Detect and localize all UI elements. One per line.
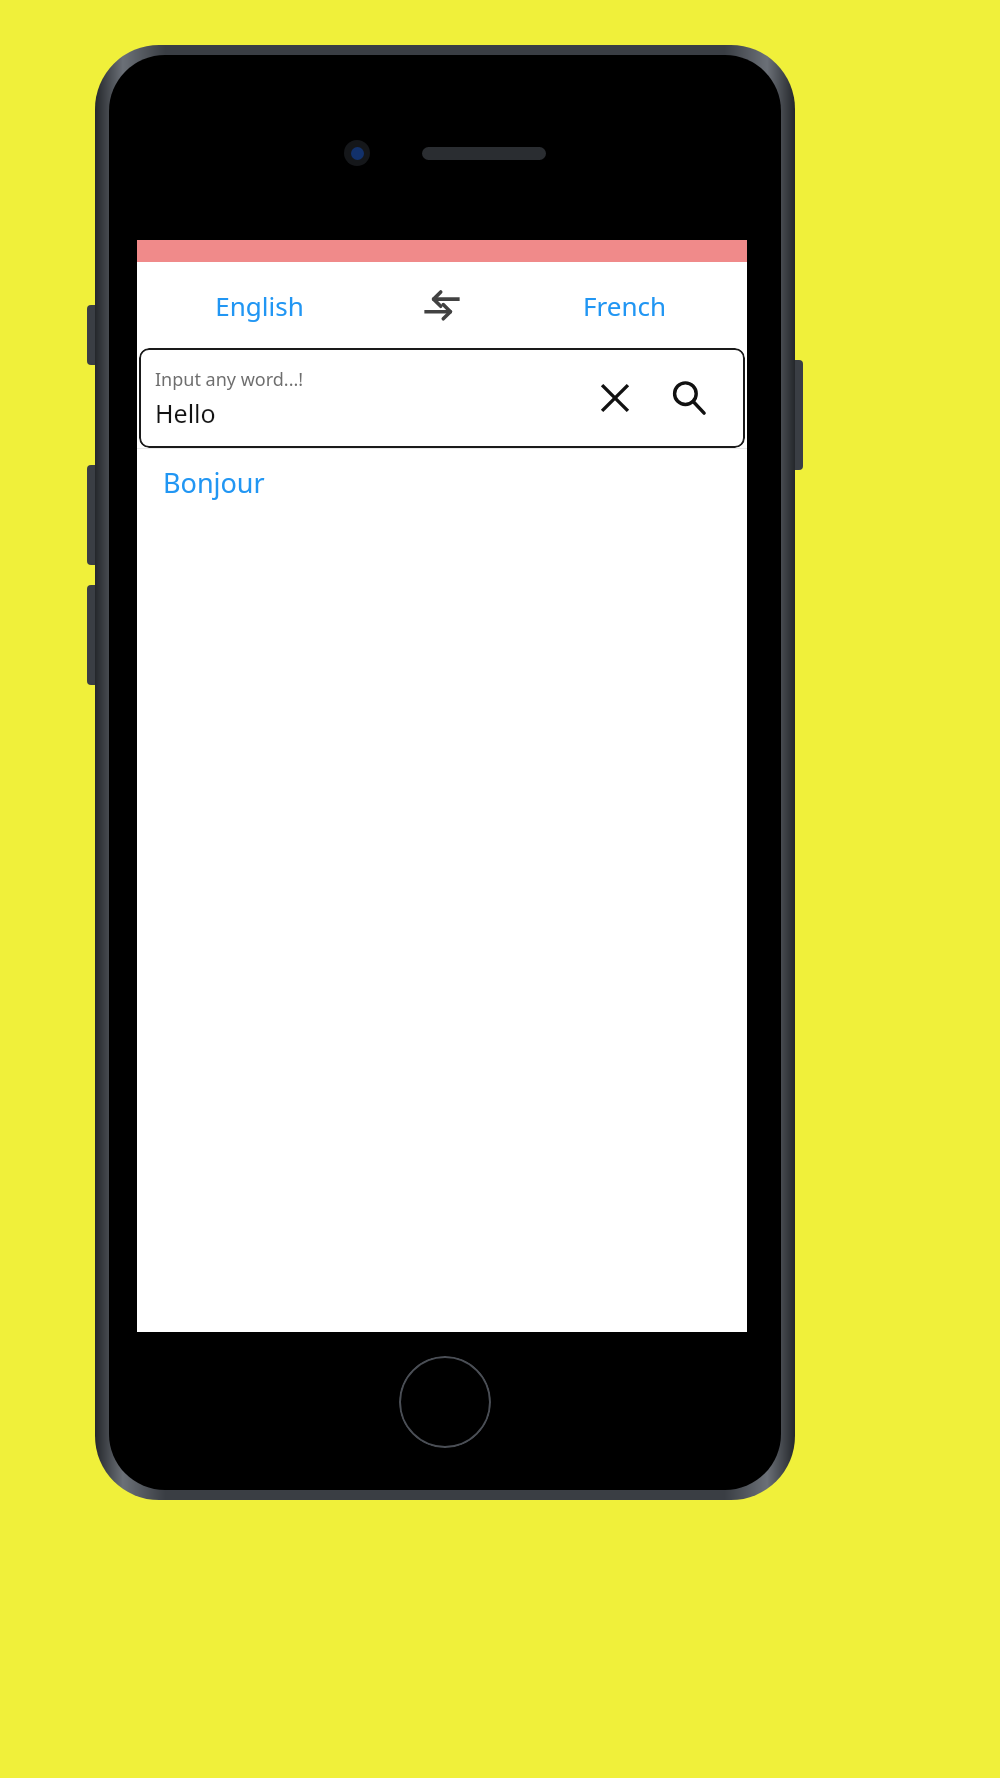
- staticText: Hello: [155, 396, 216, 430]
- staticText: English: [215, 288, 304, 323]
- staticText: Input any word...!: [155, 367, 304, 392]
- button[interactable]: English: [137, 262, 382, 348]
- button[interactable]: Clear text: [585, 368, 645, 428]
- staticText: French: [583, 288, 666, 323]
- button[interactable]: Search: [659, 368, 719, 428]
- button[interactable]: French: [502, 262, 747, 348]
- button[interactable]: Home: [399, 1356, 491, 1448]
- button[interactable]: Input any word...!: [139, 348, 745, 448]
- button[interactable]: Bonjour: [137, 449, 747, 515]
- staticText: Bonjour: [163, 464, 265, 501]
- button[interactable]: Swap languages: [382, 262, 502, 348]
